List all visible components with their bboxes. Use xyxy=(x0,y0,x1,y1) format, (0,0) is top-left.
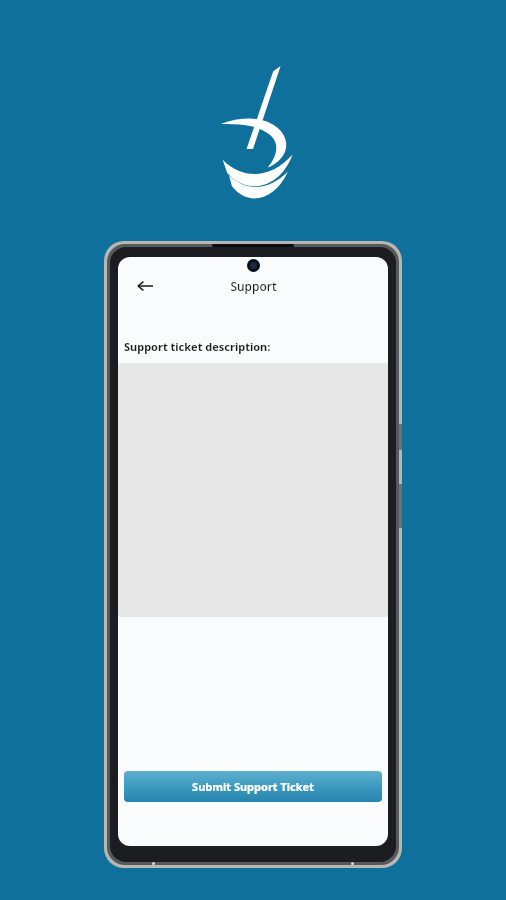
staticText: Submit Support Ticket xyxy=(192,779,314,794)
button[interactable]: Back xyxy=(128,269,162,303)
staticText: Support xyxy=(230,278,277,294)
button[interactable]: Submit Support Ticket xyxy=(124,771,382,802)
staticText: Support ticket description: xyxy=(124,339,271,354)
